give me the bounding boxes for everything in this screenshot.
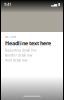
staticText: Headline text here <box>5 39 51 47</box>
staticText: Supporting detail line <box>5 49 37 52</box>
staticText: Another detail row <box>5 54 32 57</box>
staticText: SECTION <box>5 35 16 38</box>
staticText: ▂▄ ▮ <box>51 2 60 6</box>
staticText: 9:41 <box>4 1 11 7</box>
staticText: Third detail row <box>5 59 27 62</box>
